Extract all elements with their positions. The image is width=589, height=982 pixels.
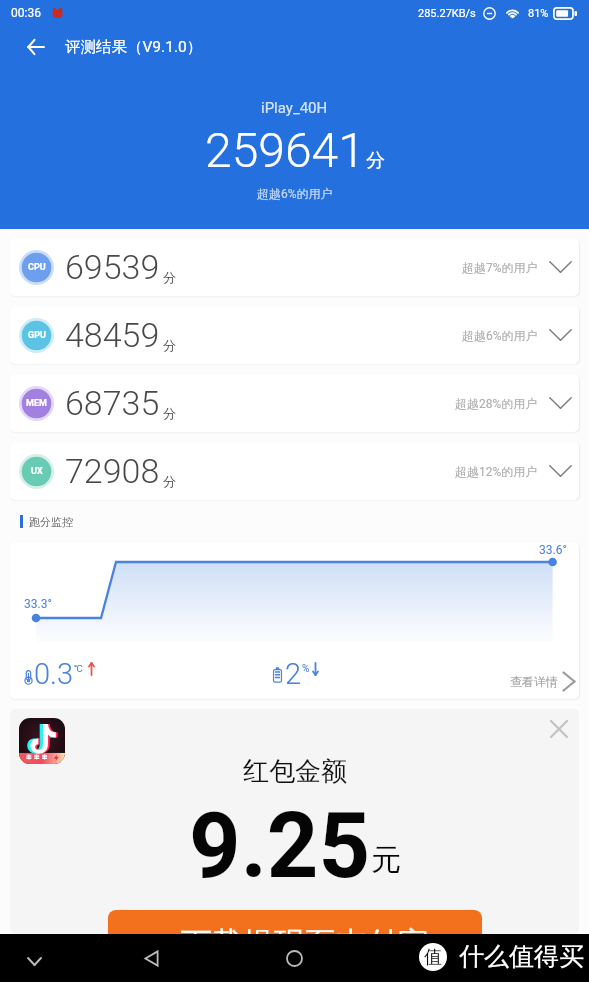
staticText: 评测结果（V9.1.0）	[65, 37, 203, 57]
staticText: ℃	[74, 663, 83, 675]
staticText: 81%	[528, 7, 549, 20]
staticText: 285.27KB/s	[418, 7, 476, 20]
button[interactable]: Hide keyboard	[12, 939, 56, 982]
button[interactable]: Douyin app icon	[19, 718, 65, 764]
staticText: 分	[163, 269, 176, 285]
staticText: 48459	[65, 315, 160, 355]
button[interactable]: 33.3°	[10, 542, 579, 699]
staticText: 元	[371, 841, 401, 879]
button[interactable]: 查看详情	[510, 671, 576, 692]
button[interactable]: UX	[10, 442, 579, 500]
staticText: MEM	[26, 398, 47, 409]
button[interactable]: Close ad	[539, 709, 579, 749]
staticText: 分	[163, 337, 176, 353]
staticText: 分	[163, 405, 176, 421]
staticText: 33.6°	[539, 543, 567, 557]
staticText: 跑分监控	[29, 515, 73, 528]
staticText: 分	[366, 149, 385, 173]
staticText: 下载提现至支付宝	[181, 924, 429, 934]
staticText: 红包金额	[243, 755, 347, 788]
staticText: UX	[31, 466, 43, 477]
staticText: 超越28%的用户	[455, 396, 538, 411]
button[interactable]: GPU	[10, 306, 579, 364]
staticText: %	[302, 663, 310, 675]
staticText: 超越12%的用户	[455, 464, 538, 479]
staticText: 68735	[65, 383, 160, 423]
staticText: CPU	[28, 262, 46, 273]
button[interactable]: 下载提现至支付宝	[108, 910, 482, 934]
staticText: 超越6%的用户	[257, 186, 333, 201]
button[interactable]: CPU	[10, 238, 579, 296]
button[interactable]: Back	[13, 26, 57, 68]
staticText: 值	[424, 946, 442, 969]
staticText: iPlay_40H	[261, 99, 328, 117]
staticText: 69539	[65, 247, 160, 287]
staticText: 33.3°	[24, 597, 52, 611]
staticText: 9.25	[189, 794, 371, 899]
staticText: 00:36	[11, 6, 41, 20]
staticText: 分	[163, 473, 176, 489]
staticText: 什么值得买	[459, 941, 584, 972]
staticText: 0.3	[34, 657, 74, 691]
staticText: 2	[285, 657, 302, 691]
staticText: 259641	[205, 122, 365, 178]
staticText: 超越7%的用户	[462, 260, 538, 275]
staticText: 查看详情	[510, 674, 558, 689]
button[interactable]: MEM	[10, 374, 579, 432]
button[interactable]: Back	[129, 936, 173, 980]
button[interactable]: Home	[272, 936, 316, 980]
staticText: GPU	[28, 330, 46, 341]
staticText: 72908	[65, 451, 160, 491]
staticText: 超越6%的用户	[462, 328, 538, 343]
